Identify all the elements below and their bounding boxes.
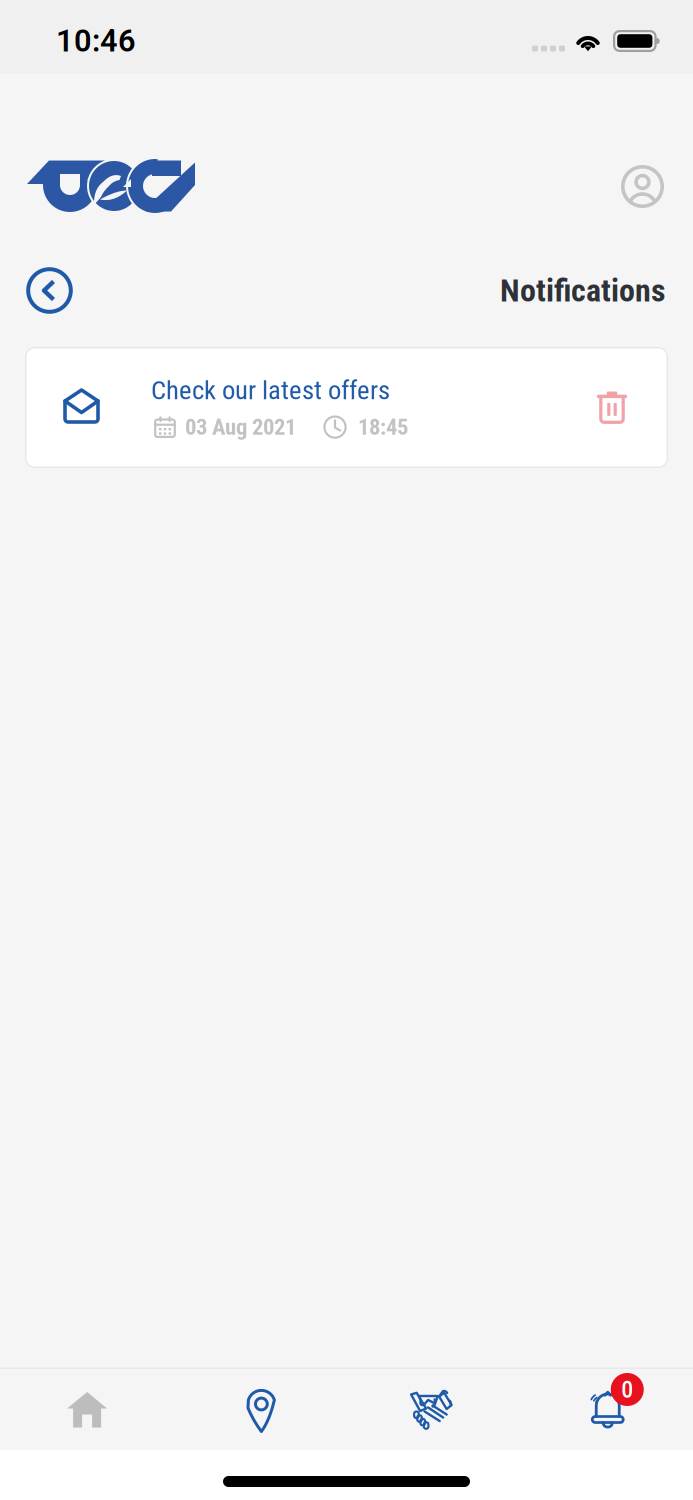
- staticText: Check our latest offers: [151, 375, 390, 406]
- button[interactable]: Home: [0, 1369, 173, 1450]
- button[interactable]: Check our latest offers: [25, 347, 668, 468]
- button[interactable]: Agencies: [173, 1369, 346, 1450]
- button[interactable]: Account: [621, 165, 664, 208]
- staticText: 0: [621, 1375, 633, 1403]
- staticText: 03 Aug 2021: [185, 414, 296, 440]
- button[interactable]: Services: [346, 1369, 520, 1450]
- button[interactable]: Back: [26, 267, 73, 314]
- staticText: 18:45: [358, 414, 408, 440]
- staticText: 10:46: [56, 23, 136, 59]
- staticText: Notifications: [500, 272, 666, 309]
- button[interactable]: TCC home: [26, 160, 196, 213]
- button[interactable]: Notifications: [520, 1369, 693, 1450]
